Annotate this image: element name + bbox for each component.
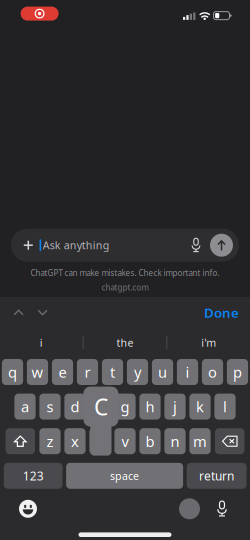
button[interactable]: i'm [167,331,250,354]
staticText: f [97,397,102,416]
button[interactable]: r [77,359,98,385]
staticText: i [185,362,189,382]
button[interactable]: Delete [215,428,244,454]
button[interactable]: f [89,394,111,420]
staticText: ChatGPT can make mistakes. Check importa… [30,268,219,278]
staticText: p [233,362,242,382]
button[interactable]: e [52,359,73,385]
staticText: Ask anything [43,238,110,252]
staticText: a [21,397,29,416]
staticText: e [58,362,66,382]
button[interactable]: l [214,394,236,420]
staticText: chatgpt.com [101,282,148,293]
button[interactable]: x [64,428,86,454]
button[interactable]: Dictation [211,497,233,521]
button[interactable]: Done [204,297,250,327]
staticText: return [199,468,234,484]
button[interactable]: Add attachment [11,229,40,262]
staticText: m [193,431,207,451]
button[interactable]: Emoji [14,497,42,521]
staticText: w [31,362,43,382]
staticText: i [40,335,43,350]
button[interactable]: b [139,428,161,454]
button[interactable]: space [66,463,183,489]
button[interactable]: o [202,359,223,385]
button[interactable]: p [227,359,248,385]
button[interactable]: Previous field [7,297,31,327]
button[interactable]: k [189,394,211,420]
button[interactable]: y [127,359,148,385]
button[interactable]: g [114,394,136,420]
staticText: s [46,397,53,416]
staticText: the [116,335,133,350]
button[interactable]: return [187,463,246,489]
button[interactable]: t [102,359,123,385]
button[interactable]: the [84,331,166,354]
staticText: 123 [23,468,44,484]
button[interactable]: n [164,428,186,454]
staticText: o [208,362,217,382]
staticText: q [8,362,17,382]
staticText: r [84,362,90,382]
staticText: space [110,469,139,483]
staticText: i'm [201,335,216,350]
button[interactable]: v [114,428,136,454]
staticText: j [173,397,177,416]
staticText: y [134,362,141,382]
button[interactable]: d [64,394,86,420]
staticText: C [94,391,108,422]
button[interactable]: 123 [4,463,62,489]
staticText: h [145,397,154,416]
button[interactable]: m [189,428,211,454]
staticText: v [121,431,128,451]
staticText: n [170,431,179,451]
button[interactable]: Send [207,229,236,262]
button[interactable]: h [139,394,161,420]
staticText: z [46,431,53,451]
staticText: u [158,362,167,382]
staticText: b [145,431,154,451]
button[interactable]: i [0,331,83,354]
button[interactable]: z [39,428,61,454]
button[interactable]: j [164,394,186,420]
staticText: k [196,397,204,416]
staticText: l [223,397,227,416]
button[interactable]: Dictate [185,229,207,262]
button[interactable]: a [14,394,36,420]
button[interactable]: i [177,359,198,385]
staticText: d [70,397,79,416]
staticText: t [110,362,115,382]
button[interactable]: s [39,394,61,420]
button[interactable]: u [152,359,173,385]
button[interactable]: Shift [6,428,35,454]
staticText: Done [204,304,239,321]
button[interactable]: w [27,359,48,385]
button[interactable]: Next field [31,297,55,327]
staticText: g [120,397,129,416]
button[interactable]: q [2,359,23,385]
staticText: x [71,431,79,451]
